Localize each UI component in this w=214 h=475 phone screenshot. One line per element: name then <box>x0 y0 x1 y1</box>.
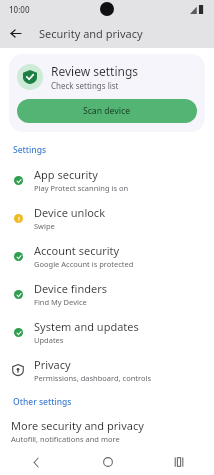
button[interactable]: System and updates <box>0 313 214 351</box>
staticText: Swipe <box>34 221 55 231</box>
button[interactable]: Account security <box>0 237 214 275</box>
staticText: Autofill, notifications and more <box>11 434 120 443</box>
button[interactable]: Device finders <box>0 275 214 313</box>
staticText: App security <box>34 167 98 182</box>
staticText: More security and privacy <box>11 418 144 433</box>
button[interactable]: App security <box>0 161 214 199</box>
staticText: Check settings list <box>51 80 119 91</box>
button[interactable]: Recents <box>143 449 214 475</box>
staticText: Device finders <box>34 281 107 296</box>
staticText: Review settings <box>51 63 139 79</box>
button[interactable]: Back <box>6 24 24 42</box>
staticText: Privacy <box>34 357 71 372</box>
staticText: Settings <box>13 144 47 156</box>
staticText: Find My Device <box>34 297 87 307</box>
button[interactable]: Back <box>0 449 72 475</box>
staticText: Google Account is protected <box>34 259 134 269</box>
staticText: Scan device <box>83 105 131 117</box>
button[interactable]: Privacy <box>0 351 214 389</box>
staticText: Permissions, dashboard, controls <box>34 373 152 383</box>
staticText: Security and privacy <box>39 26 143 41</box>
button[interactable]: More security and privacy <box>0 414 214 449</box>
staticText: Updates <box>34 335 64 345</box>
staticText: Play Protect scanning is on <box>34 183 129 193</box>
button[interactable]: Scan device <box>17 99 197 123</box>
button[interactable]: Home <box>72 449 143 475</box>
staticText: Other settings <box>13 396 72 408</box>
staticText: Device unlock <box>34 205 106 220</box>
staticText: Account security <box>34 243 120 258</box>
staticText: System and updates <box>34 319 139 334</box>
button[interactable]: Device unlock <box>0 199 214 237</box>
staticText: 10:00 <box>9 4 30 15</box>
button[interactable]: Review settings <box>9 54 205 132</box>
